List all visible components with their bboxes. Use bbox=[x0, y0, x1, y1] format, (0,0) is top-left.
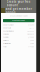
staticText: on thousands of items bbox=[3, 14, 34, 18]
button[interactable]: Payment method bbox=[1, 30, 36, 33]
staticText: Subtotal bbox=[3, 36, 8, 38]
staticText: every single day. bbox=[8, 18, 30, 21]
staticText: Order number bbox=[3, 24, 14, 26]
staticText: Create your free account bbox=[7, 0, 31, 7]
staticText: Visa 4242 bbox=[27, 30, 34, 32]
staticText: $143.80 bbox=[28, 46, 34, 48]
staticText: Mar 14 bbox=[29, 27, 34, 29]
button[interactable]: Delivery bbox=[1, 39, 36, 42]
staticText: Delivery bbox=[3, 40, 9, 41]
button[interactable]: Order number bbox=[1, 23, 36, 26]
staticText: Standard bbox=[27, 33, 34, 35]
staticText: Payment method bbox=[3, 30, 14, 32]
staticText: Order date bbox=[3, 27, 11, 29]
staticText: Already a member? Sign in bbox=[10, 15, 28, 17]
staticText: and get member pricing bbox=[6, 7, 32, 14]
staticText: Shipping bbox=[3, 33, 9, 35]
staticText: $128.00 bbox=[28, 36, 34, 38]
button[interactable]: Shipping bbox=[1, 33, 36, 36]
button[interactable]: Estimated tax bbox=[1, 42, 36, 45]
button[interactable]: Order date bbox=[1, 26, 36, 30]
button[interactable]: Total bbox=[1, 45, 36, 48]
staticText: Total bbox=[3, 46, 6, 48]
button[interactable]: Subtotal bbox=[1, 36, 36, 39]
staticText: Create account bbox=[12, 20, 25, 21]
staticText: $6.00 bbox=[30, 40, 34, 41]
staticText: $9.80 bbox=[30, 43, 34, 44]
button[interactable]: Create account bbox=[3, 19, 34, 22]
staticText: Estimated tax bbox=[3, 43, 11, 44]
